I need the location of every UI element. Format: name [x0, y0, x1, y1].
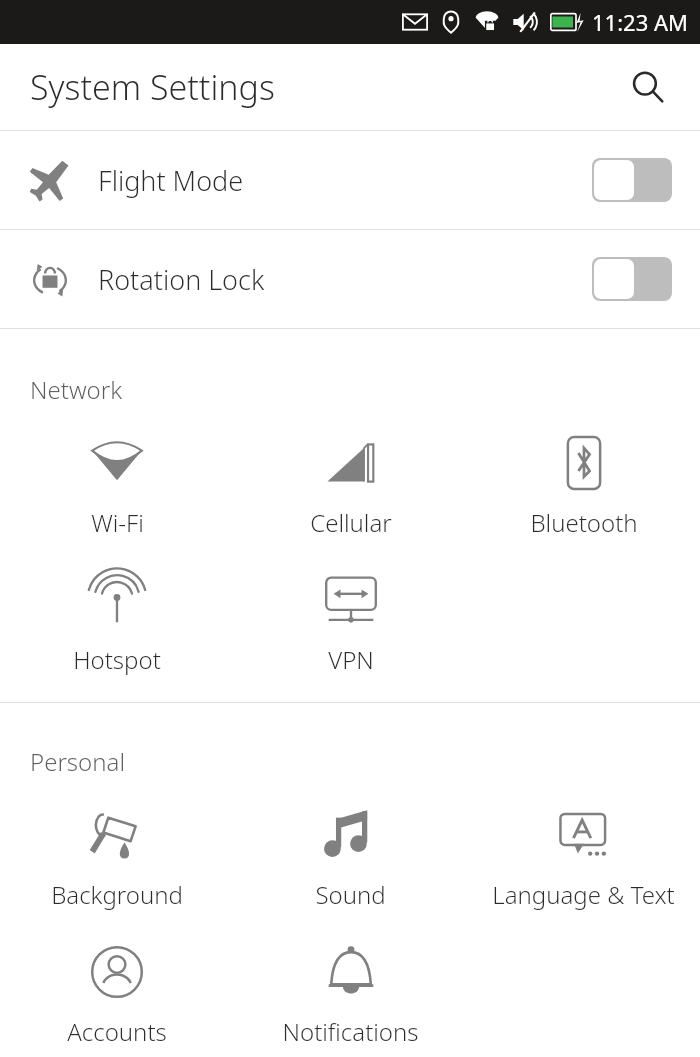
- staticText: Flight Mode: [98, 162, 244, 199]
- staticText: Background: [51, 878, 183, 911]
- button[interactable]: Toggle: [592, 257, 672, 301]
- button[interactable]: Rotation Lock: [0, 230, 700, 328]
- button[interactable]: Bluetooth: [467, 428, 700, 543]
- button[interactable]: Search: [620, 59, 676, 115]
- staticText: Wi-Fi: [91, 506, 144, 539]
- staticText: Accounts: [67, 1015, 167, 1048]
- button[interactable]: Sound: [234, 800, 467, 915]
- staticText: Network: [30, 373, 123, 406]
- staticText: Personal: [30, 745, 125, 778]
- button[interactable]: Language & Text: [467, 800, 700, 915]
- staticText: VPN: [328, 643, 374, 676]
- staticText: System Settings: [30, 64, 275, 110]
- staticText: Cellular: [310, 506, 392, 539]
- staticText: 11:23 AM: [592, 7, 688, 37]
- staticText: Hotspot: [73, 643, 161, 676]
- staticText: Bluetooth: [530, 506, 638, 539]
- button[interactable]: Toggle: [592, 158, 672, 202]
- button[interactable]: Cellular: [234, 428, 467, 543]
- button[interactable]: Flight Mode: [0, 131, 700, 229]
- staticText: Notifications: [282, 1015, 419, 1048]
- staticText: Language & Text: [492, 878, 675, 911]
- button[interactable]: Notifications: [234, 937, 467, 1052]
- staticText: Rotation Lock: [98, 261, 265, 298]
- button[interactable]: Background: [0, 800, 234, 915]
- button[interactable]: Hotspot: [0, 565, 234, 680]
- button[interactable]: Wi-Fi: [0, 428, 234, 543]
- button[interactable]: Accounts: [0, 937, 234, 1052]
- staticText: Sound: [315, 878, 386, 911]
- button[interactable]: VPN: [234, 565, 467, 680]
